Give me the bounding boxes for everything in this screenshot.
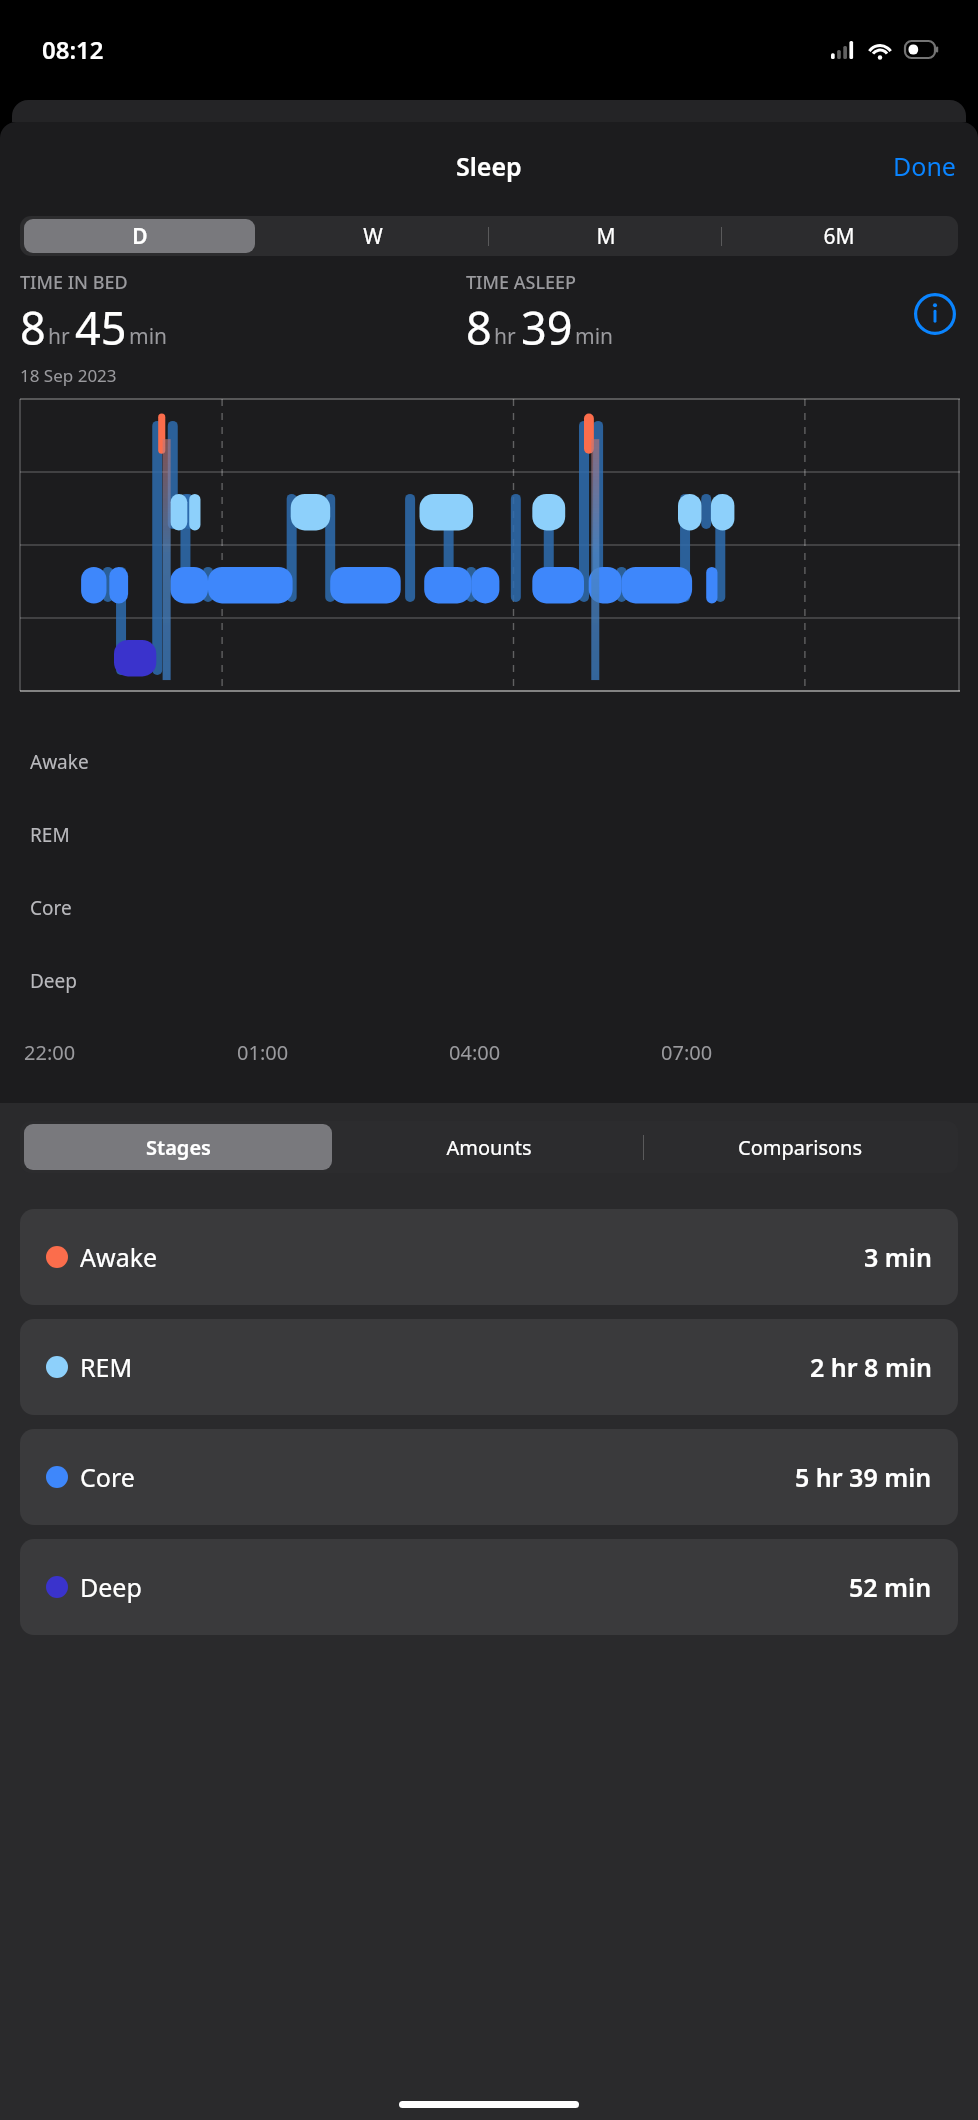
button[interactable]: Information xyxy=(912,291,958,337)
staticText: Core xyxy=(30,895,72,921)
staticText: TIME ASLEEP xyxy=(466,270,577,295)
staticText: Stages xyxy=(146,1134,211,1161)
staticText: 8 xyxy=(20,297,46,358)
staticText: 45 xyxy=(75,297,127,358)
staticText: REM xyxy=(80,1350,133,1384)
staticText: D xyxy=(132,222,148,251)
button[interactable]: Deep xyxy=(20,1539,958,1635)
button[interactable]: REM xyxy=(20,1319,958,1415)
staticText: hr xyxy=(494,322,516,351)
button[interactable]: D xyxy=(24,219,255,253)
staticText: min xyxy=(575,322,614,351)
staticText: Done xyxy=(893,149,956,183)
staticText: 6M xyxy=(823,222,855,251)
staticText: Comparisons xyxy=(738,1134,862,1161)
staticText: hr xyxy=(48,322,70,351)
button[interactable]: Comparisons xyxy=(645,1124,954,1170)
staticText: 01:00 xyxy=(237,1039,289,1066)
button[interactable]: 6M xyxy=(723,219,954,253)
staticText: Deep xyxy=(30,968,77,994)
button[interactable]: M xyxy=(490,219,721,253)
staticText: Awake xyxy=(80,1240,158,1274)
button[interactable]: Core xyxy=(20,1429,958,1525)
button[interactable]: Stages xyxy=(24,1124,332,1170)
staticText: 2 hr 8 min xyxy=(810,1350,932,1384)
staticText: min xyxy=(129,322,168,351)
button[interactable]: Done xyxy=(871,139,978,193)
staticText: TIME IN BED xyxy=(20,270,128,295)
staticText: Core xyxy=(80,1460,135,1494)
staticText: 22:00 xyxy=(24,1039,76,1066)
staticText: 3 min xyxy=(864,1240,932,1274)
staticText: REM xyxy=(30,822,70,848)
staticText: 52 min xyxy=(849,1570,932,1604)
staticText: Sleep xyxy=(456,149,522,183)
staticText: 39 xyxy=(521,297,573,358)
staticText: W xyxy=(363,222,383,251)
staticText: 18 Sep 2023 xyxy=(20,364,117,387)
staticText: 8 xyxy=(466,297,492,358)
staticText: Amounts xyxy=(446,1134,532,1161)
button[interactable]: W xyxy=(257,219,488,253)
staticText: 5 hr 39 min xyxy=(795,1460,932,1494)
staticText: 04:00 xyxy=(449,1039,501,1066)
button[interactable]: Amounts xyxy=(334,1124,643,1170)
staticText: Deep xyxy=(80,1570,142,1604)
staticText: Awake xyxy=(30,749,89,775)
button[interactable]: Awake xyxy=(20,1209,958,1305)
staticText: 07:00 xyxy=(661,1039,713,1066)
staticText: 08:12 xyxy=(42,33,104,66)
staticText: M xyxy=(596,222,616,251)
